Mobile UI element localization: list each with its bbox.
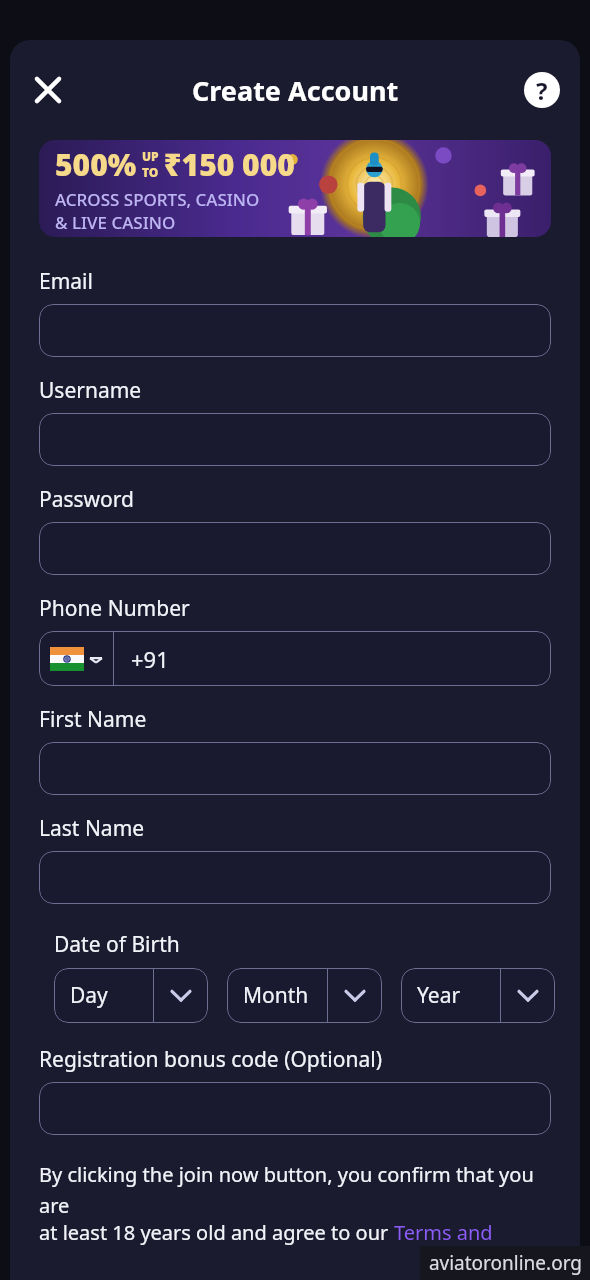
staticText: Year (417, 981, 461, 1010)
staticText: ACROSS SPORTS, CASINO (55, 188, 260, 211)
staticText: Last Name (39, 814, 145, 843)
staticText: & LIVE CASINO (55, 211, 176, 234)
staticText: Email (39, 267, 93, 296)
staticText: Day (70, 981, 108, 1010)
button[interactable]: Month (227, 968, 382, 1023)
staticText: Registration bonus code (Optional) (39, 1045, 382, 1074)
staticText: Create Account (192, 72, 399, 109)
button[interactable] (39, 851, 551, 904)
staticText: UP (142, 148, 159, 164)
button[interactable] (39, 1082, 551, 1135)
button[interactable] (39, 304, 551, 357)
staticText: 500% (55, 144, 137, 185)
staticText: Password (39, 485, 134, 514)
staticText: aviatoronline.org (428, 1250, 582, 1276)
staticText: By clicking the join now button, you con… (39, 1161, 551, 1219)
staticText: ? (536, 74, 548, 107)
button[interactable]: Terms and (394, 1219, 493, 1246)
staticText: Month (243, 981, 309, 1010)
button[interactable]: Help (516, 64, 568, 116)
button[interactable] (39, 413, 551, 466)
button[interactable] (39, 742, 551, 795)
staticText: Date of Birth (54, 930, 180, 959)
button[interactable]: 500% (39, 140, 551, 237)
staticText: First Name (39, 705, 147, 734)
staticText: Phone Number (39, 594, 190, 623)
staticText: TO (142, 164, 159, 180)
button[interactable]: Day (54, 968, 208, 1023)
button[interactable]: Year (401, 968, 555, 1023)
staticText: Username (39, 376, 142, 405)
button[interactable]: Close (20, 62, 76, 118)
button[interactable]: Select country code (39, 631, 113, 686)
button[interactable]: +91 (114, 631, 551, 686)
staticText: at least 18 years old and agree to our (39, 1219, 394, 1246)
staticText: +91 (131, 644, 169, 674)
staticText: ₹150 000 (164, 144, 295, 185)
button[interactable] (39, 522, 551, 575)
